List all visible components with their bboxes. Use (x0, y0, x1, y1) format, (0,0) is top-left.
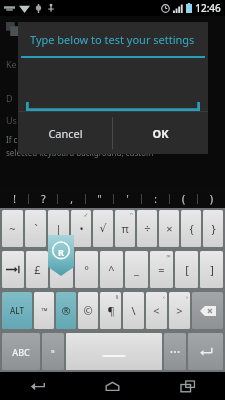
button[interactable]: • (71, 210, 91, 247)
button[interactable]: | (48, 210, 69, 247)
button[interactable]: Backspace (192, 292, 223, 329)
button[interactable]: Back (0, 372, 75, 400)
staticText: ' (126, 192, 129, 206)
staticText: Type below to test your settings (30, 32, 195, 47)
button[interactable]: Home (75, 372, 150, 400)
button[interactable]: Cancel (18, 112, 112, 154)
button[interactable]: Appearance (0, 16, 225, 42)
staticText: D (6, 92, 13, 104)
staticText: _ (134, 262, 139, 277)
button[interactable]: ' (114, 190, 141, 208)
button[interactable]: ° (75, 251, 98, 288)
button[interactable]: OK (113, 112, 208, 154)
button[interactable] (26, 99, 200, 111)
staticText: ` (34, 221, 38, 236)
staticText: , (70, 192, 73, 206)
button[interactable]: ( (170, 190, 197, 208)
staticText: ÷ (144, 221, 151, 236)
staticText: Ke (6, 58, 17, 70)
button[interactable]: £ (26, 251, 48, 288)
button[interactable]: ] (200, 251, 223, 288)
button[interactable]: Tab (2, 251, 24, 288)
staticText: ! (13, 192, 16, 206)
staticText: ® (61, 303, 71, 318)
staticText: ) (210, 192, 213, 206)
button[interactable]: " (86, 190, 113, 208)
button[interactable]: = (150, 251, 173, 288)
button[interactable]: Enter (188, 333, 223, 370)
staticText: ~ (9, 221, 16, 236)
staticText: R (58, 246, 64, 258)
staticText: ™ (41, 305, 48, 316)
staticText: ( (182, 192, 185, 206)
staticText: [ (185, 262, 189, 277)
staticText: } (211, 221, 216, 236)
button[interactable]: < (146, 292, 167, 329)
button[interactable]: ` (25, 210, 46, 247)
button[interactable]: ABC (2, 333, 40, 370)
staticText: ALT (10, 305, 24, 316)
staticText: Us (6, 114, 17, 126)
button[interactable]: ? (29, 190, 57, 208)
button[interactable]: Recents (150, 372, 225, 400)
staticText: √ (99, 222, 107, 235)
button[interactable]: ® (56, 292, 76, 329)
staticText: | (55, 221, 62, 236)
staticText: ⁿ (51, 346, 55, 357)
button[interactable]: \ (123, 292, 144, 329)
staticText: ‹ (163, 293, 165, 301)
button[interactable]: ! (0, 190, 28, 208)
staticText: > (176, 303, 183, 318)
staticText: § (115, 293, 119, 301)
button[interactable]: : (142, 190, 169, 208)
button[interactable]: ÷ (137, 210, 157, 247)
staticText: { (189, 221, 194, 236)
staticText: • (79, 221, 84, 236)
button[interactable]: € (50, 251, 73, 288)
staticText: selected keyboard background, custom (6, 147, 154, 158)
staticText: Cancel (48, 126, 83, 141)
staticText: × (166, 221, 173, 236)
button[interactable]: ~ (2, 210, 23, 247)
staticText: ¶ (107, 303, 115, 318)
button[interactable]: ¶ (100, 292, 121, 329)
button[interactable]: , (58, 190, 85, 208)
staticText: © (83, 303, 93, 318)
staticText: OK (152, 126, 169, 141)
staticText: 12:46 (195, 1, 221, 15)
button[interactable]: √ (93, 210, 113, 247)
staticText: ] (210, 262, 214, 277)
staticText: = (158, 262, 165, 277)
button[interactable]: { (181, 210, 201, 247)
button[interactable]: © (78, 292, 98, 329)
button[interactable]: × (159, 210, 179, 247)
staticText: ∞ (166, 252, 171, 259)
staticText: ✓ (83, 211, 89, 218)
staticText: ? (41, 192, 46, 206)
staticText: < (153, 303, 160, 318)
staticText: π (121, 221, 129, 236)
staticText: ⁿ (130, 211, 133, 219)
staticText: " (97, 192, 102, 206)
staticText: £ (34, 262, 41, 277)
staticText: If checked background image will be used… (6, 134, 174, 145)
staticText: € (58, 262, 65, 277)
button[interactable]: ALT (2, 292, 32, 329)
button[interactable]: [ (175, 251, 198, 288)
button[interactable]: ) (198, 190, 225, 208)
staticText: Appearance (27, 21, 95, 37)
staticText: \ (131, 303, 136, 318)
button[interactable]: ™ (34, 292, 54, 329)
button[interactable]: More (164, 333, 186, 370)
staticText: ^ (108, 262, 115, 277)
staticText: ° (84, 262, 89, 277)
button[interactable]: ^ (100, 251, 123, 288)
button[interactable]: π (115, 210, 135, 247)
button[interactable]: ⁿ (42, 333, 64, 370)
button[interactable]: } (203, 210, 223, 247)
staticText: : (154, 192, 157, 206)
button[interactable]: Space (66, 333, 162, 370)
button[interactable]: _ (125, 251, 148, 288)
button[interactable]: > (169, 292, 190, 329)
staticText: ABC (12, 346, 30, 358)
